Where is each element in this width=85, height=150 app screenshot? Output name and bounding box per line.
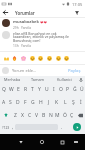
button[interactable]: H <box>37 96 45 109</box>
button[interactable]: C <box>26 109 33 121</box>
button[interactable]: M <box>54 109 61 121</box>
staticText: 29h Yanıtla <box>13 26 32 30</box>
staticText: H <box>39 99 43 106</box>
button[interactable]: Y <box>36 83 43 96</box>
staticText: U <box>45 86 49 93</box>
button[interactable]: G <box>29 96 37 109</box>
staticText: , <box>12 124 14 130</box>
button[interactable]: Emoji reaction <box>10 54 18 62</box>
button[interactable]: . <box>58 121 66 133</box>
staticText: D <box>16 99 20 106</box>
staticText: Y <box>38 86 41 93</box>
staticText: . <box>61 124 63 130</box>
staticText: M <box>55 112 60 119</box>
button[interactable]: S <box>7 96 14 109</box>
button[interactable]: O <box>57 83 64 96</box>
staticText: Ö <box>63 112 67 119</box>
button[interactable]: Voice input <box>77 76 85 83</box>
button[interactable]: Emoji reaction <box>62 54 70 62</box>
staticText: musabozbek <box>13 19 39 25</box>
button[interactable]: W <box>8 83 15 96</box>
staticText: 17:05 <box>72 2 83 7</box>
button[interactable]: Emoji reaction <box>19 54 27 62</box>
staticText: ❤❤ <box>40 20 48 25</box>
staticText: N <box>49 112 53 119</box>
button[interactable]: Switch keyboard <box>71 137 81 147</box>
button[interactable]: Ğ <box>71 83 78 96</box>
button[interactable]: Q <box>0 83 8 96</box>
button[interactable]: U <box>43 83 50 96</box>
button[interactable]: , <box>11 121 15 133</box>
button[interactable]: Recent apps <box>57 137 67 147</box>
staticText: 13h Yanıtla <box>13 44 32 48</box>
button[interactable]: Home <box>37 137 47 147</box>
staticText: Ü <box>80 86 84 93</box>
button[interactable]: D <box>14 96 21 109</box>
staticText: C <box>28 112 32 119</box>
button[interactable]: X <box>19 109 26 121</box>
staticText: ?123 <box>2 125 10 130</box>
button[interactable]: Ş <box>69 96 77 109</box>
staticText: Yorumlar <box>15 10 35 16</box>
staticText: L <box>64 99 67 106</box>
button[interactable]: B <box>40 109 47 121</box>
staticText: F <box>24 99 27 106</box>
staticText: Ğ <box>73 86 77 93</box>
button[interactable]: musabozbek <box>0 19 85 30</box>
button[interactable]: V <box>33 109 40 121</box>
staticText: Tamam <box>31 77 45 82</box>
button[interactable]: Merhaba <box>0 76 25 83</box>
staticText: P <box>66 86 70 93</box>
staticText: elise.off4 Bonushost en çok kazandiran, … <box>13 31 69 43</box>
staticText: W <box>9 86 14 93</box>
staticText: X <box>21 112 24 119</box>
button[interactable]: Emoji reaction <box>54 54 62 62</box>
button[interactable]: Z <box>11 109 19 121</box>
staticText: B <box>42 112 46 119</box>
button[interactable]: Ü <box>78 83 85 96</box>
staticText: Merhaba <box>4 77 21 82</box>
button[interactable]: I <box>50 83 57 96</box>
button[interactable]: elise.off4 Bonushost en çok kazandiran, … <box>0 31 85 48</box>
button[interactable]: Ö <box>61 109 68 121</box>
button[interactable]: Filter <box>73 9 81 17</box>
button[interactable]: Back <box>1 8 10 17</box>
button[interactable]: F <box>21 96 29 109</box>
staticText: Kullanici <box>57 77 72 82</box>
button[interactable]: ?123 <box>0 121 11 133</box>
button[interactable]: Ç <box>68 109 75 121</box>
button[interactable]: N <box>47 109 54 121</box>
button[interactable]: R <box>22 83 29 96</box>
button[interactable]: Send <box>73 123 81 131</box>
button[interactable]: P <box>64 83 71 96</box>
button[interactable]: Hide keyboard <box>16 137 26 147</box>
staticText: E <box>17 86 20 93</box>
button[interactable]: Shift <box>0 109 11 121</box>
staticText: K <box>55 99 59 106</box>
button[interactable]: Emoji reaction <box>36 54 44 62</box>
staticText: Z <box>14 112 17 119</box>
button[interactable]: J <box>45 96 53 109</box>
button[interactable]: Kullanici <box>51 76 77 83</box>
staticText: İ <box>80 99 82 106</box>
staticText: Ç <box>70 112 74 119</box>
button[interactable]: Emoji reaction <box>45 54 53 62</box>
button[interactable]: A <box>0 96 7 109</box>
button[interactable]: Tamam <box>25 76 51 83</box>
button[interactable]: K <box>53 96 61 109</box>
button[interactable]: İ <box>77 96 85 109</box>
button[interactable]: L <box>61 96 69 109</box>
staticText: Ş <box>72 99 75 106</box>
staticText: O <box>59 86 63 93</box>
staticText: R <box>24 86 28 93</box>
button[interactable]: Paylaş <box>67 66 82 75</box>
staticText: V <box>35 112 39 119</box>
button[interactable]: T <box>29 83 36 96</box>
button[interactable]: Emoji reaction <box>2 54 10 62</box>
button[interactable]: E <box>15 83 22 96</box>
button[interactable]: Backspace <box>75 109 85 121</box>
staticText: S <box>9 99 12 106</box>
button[interactable]: Emoji reaction <box>28 54 36 62</box>
staticText: A <box>2 99 6 106</box>
